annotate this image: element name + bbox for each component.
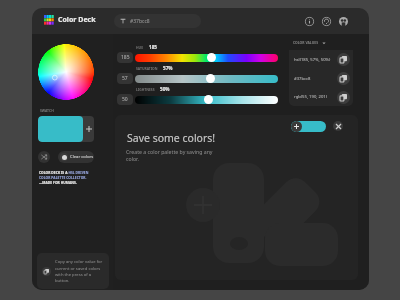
staticText: rgb(55, 190, 201) <box>294 94 327 100</box>
button[interactable]: Copy <box>337 53 350 66</box>
staticText: #37bcc8 <box>130 18 150 25</box>
button[interactable]: Close <box>333 121 343 131</box>
staticText: 50% <box>160 86 170 92</box>
staticText: 185 <box>149 44 157 50</box>
staticText: Create a color palette by saving any col… <box>126 148 213 162</box>
button[interactable]: Info <box>303 15 315 27</box>
staticText: 185 <box>121 54 130 61</box>
button[interactable]: COLOR VALUES <box>293 40 326 45</box>
button[interactable]: Color Deck <box>44 15 96 25</box>
button[interactable]: #37bcc8 <box>114 14 201 28</box>
staticText: Clear colors <box>70 154 94 160</box>
staticText: LIGHTNESS <box>136 87 155 92</box>
staticText: 57 <box>122 75 128 82</box>
staticText: Color Deck <box>58 15 96 25</box>
staticText: COLOR VALUES <box>293 40 319 45</box>
staticText: 57% <box>163 65 173 71</box>
button[interactable]: #37bcc8 <box>289 69 353 88</box>
staticText: Save some colors! <box>127 131 216 145</box>
button[interactable] <box>135 74 278 83</box>
button[interactable]: Copy <box>337 91 350 104</box>
button[interactable]: Add color <box>83 116 94 142</box>
button[interactable]: Copy <box>337 72 350 85</box>
staticText: #37bcc8 <box>294 76 311 82</box>
button[interactable]: Shuffle <box>38 151 50 163</box>
button[interactable]: 185 <box>117 52 133 63</box>
button[interactable]: hsl(185, 57%, 50%) <box>289 50 353 69</box>
button[interactable] <box>135 53 278 62</box>
staticText: SWATCH <box>40 108 54 113</box>
button[interactable]: Copy any color value for current or save… <box>37 253 109 289</box>
button[interactable]: Help <box>320 15 332 27</box>
button[interactable]: Color wheel <box>38 44 94 100</box>
staticText: 50 <box>122 96 128 103</box>
button[interactable]: rgb(55, 190, 201) <box>289 88 353 106</box>
button[interactable]: Clear colors <box>58 151 94 163</box>
button[interactable]: Current color swatch <box>38 116 83 142</box>
staticText: HUE <box>136 45 144 50</box>
staticText: COLOR DECK IS A HSL DRIVEN COLOR PALETTE… <box>39 170 89 185</box>
button[interactable]: 50 <box>117 94 133 105</box>
button[interactable] <box>135 95 278 104</box>
button[interactable]: Save color <box>291 121 326 132</box>
staticText: SATURATION <box>136 66 158 71</box>
button[interactable]: 57 <box>117 73 133 84</box>
staticText: hsl(185, 57%, 50%) <box>294 57 331 63</box>
button[interactable]: GitHub <box>337 15 349 27</box>
staticText: Copy any color value for current or save… <box>55 259 105 283</box>
